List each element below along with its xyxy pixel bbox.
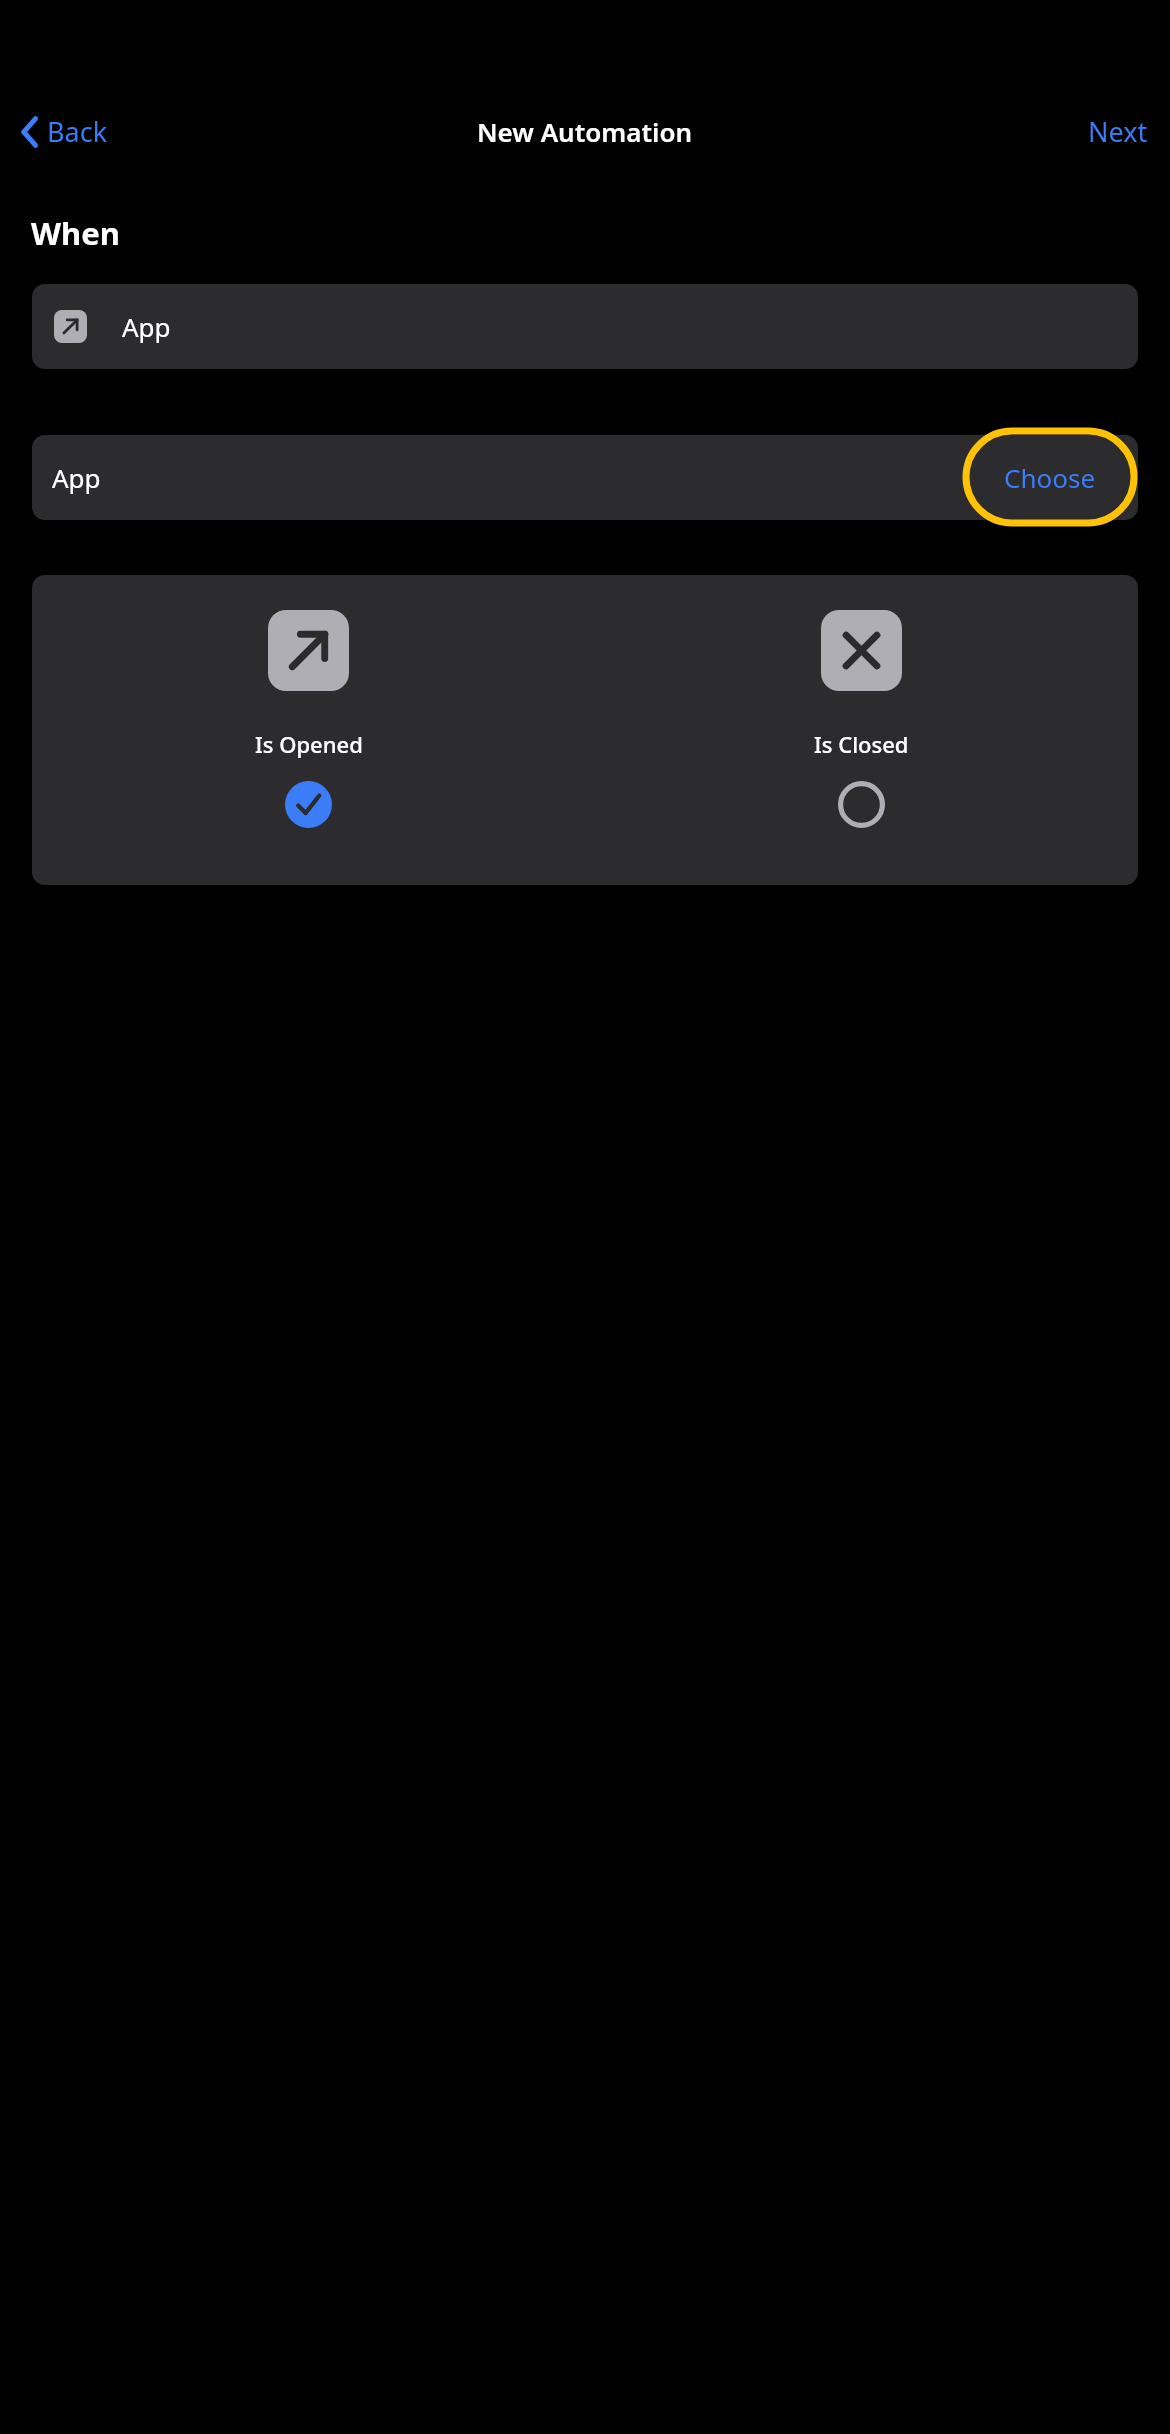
button[interactable]: Next <box>1080 107 1156 156</box>
staticText: Next <box>1088 113 1148 150</box>
button[interactable]: Back <box>12 107 116 156</box>
other: Select Is Closed <box>838 781 885 828</box>
staticText: Choose <box>1004 460 1096 495</box>
other: Is Opened selected <box>285 781 332 828</box>
button[interactable]: Is Closed <box>585 610 1138 828</box>
staticText: When <box>31 212 120 254</box>
staticText: Back <box>47 113 108 150</box>
staticText: App <box>122 309 171 344</box>
button[interactable]: App <box>32 284 1138 369</box>
staticText: Is Opened <box>255 729 363 759</box>
staticText: Is Closed <box>814 729 909 759</box>
button[interactable]: App <box>32 435 1138 520</box>
staticText: New Automation <box>477 114 693 149</box>
button[interactable]: Choose <box>962 427 1138 527</box>
staticText: App <box>52 460 101 495</box>
button[interactable]: Is Opened <box>32 610 585 828</box>
